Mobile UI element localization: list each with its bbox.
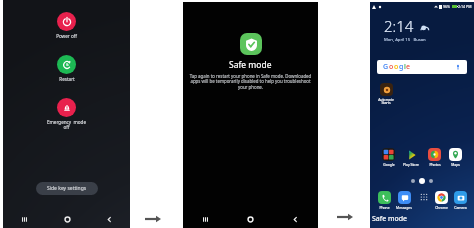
staticText: Mon, April 15 Busan	[384, 37, 426, 43]
button[interactable]: Automate Starts	[377, 82, 395, 106]
button[interactable]: Home	[46, 210, 88, 228]
staticText: Play Store	[403, 162, 419, 167]
staticText: Safe mode	[372, 214, 407, 224]
button[interactable]: G	[377, 60, 467, 74]
button[interactable]: Phone	[377, 190, 392, 211]
button[interactable]: Recents	[3, 210, 46, 228]
staticText: Restart	[59, 76, 75, 82]
other: Voice search	[455, 64, 461, 70]
staticText: 2:14	[384, 16, 414, 36]
staticText: Maps	[451, 162, 460, 167]
button[interactable]: Camera	[453, 190, 468, 211]
button[interactable]: Side key settings	[36, 182, 98, 195]
button[interactable]: Back	[273, 210, 318, 228]
staticText: Camera	[454, 205, 467, 210]
button[interactable]: Apps	[417, 190, 431, 204]
staticText: Side key settings	[47, 185, 87, 192]
staticText: Power off	[56, 33, 77, 39]
button[interactable]: Maps	[448, 147, 463, 168]
button[interactable]: Power off	[52, 11, 81, 40]
staticText: Safe mode	[229, 59, 272, 71]
button[interactable]: Chrome	[434, 190, 449, 211]
button[interactable]: Back	[88, 210, 130, 228]
button[interactable]: Home	[228, 210, 273, 228]
staticText: Emergency mode off	[47, 119, 86, 131]
button[interactable]: Restart	[53, 54, 80, 83]
staticText: Tap again to restart your phone in Safe …	[189, 73, 312, 91]
staticText: Chrome	[435, 205, 448, 210]
staticText: 2:14 PM	[458, 4, 472, 9]
button[interactable]: Google	[381, 147, 396, 168]
staticText: e	[406, 62, 411, 72]
staticText: Automate Starts	[378, 97, 394, 105]
staticText: G	[383, 62, 389, 72]
staticText: Photos	[429, 162, 441, 167]
staticText: o	[394, 62, 399, 72]
staticText: 96%	[443, 4, 451, 9]
button[interactable]: Photos	[427, 147, 442, 168]
button[interactable]: Play Store	[402, 147, 420, 168]
button[interactable]: Emergency mode off	[43, 97, 90, 132]
button[interactable]: Messages	[395, 190, 413, 211]
staticText: l	[404, 62, 406, 72]
staticText: Messages	[396, 205, 412, 210]
staticText: Google	[383, 162, 395, 167]
staticText: o	[389, 62, 394, 72]
staticText: Phone	[379, 205, 390, 210]
button[interactable]: Recents	[183, 210, 228, 228]
staticText: g	[399, 62, 404, 72]
